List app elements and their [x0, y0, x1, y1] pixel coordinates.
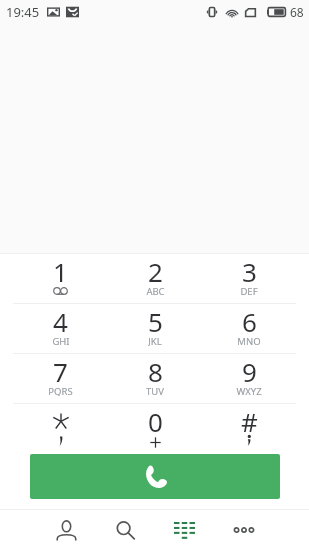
staticText: PQRS: [48, 385, 73, 396]
button[interactable]: 9: [202, 354, 296, 403]
button[interactable]: 3: [202, 254, 296, 303]
staticText: 0: [148, 404, 163, 434]
staticText: DEF: [240, 285, 258, 296]
button[interactable]: 1: [13, 254, 108, 303]
staticText: #: [241, 404, 258, 434]
button[interactable]: Call: [30, 454, 280, 499]
staticText: 9: [242, 354, 257, 384]
button[interactable]: 5: [108, 304, 202, 353]
staticText: 5: [148, 304, 163, 334]
staticText: GHI: [52, 335, 70, 346]
staticText: 68: [290, 4, 304, 20]
staticText: 3: [242, 254, 257, 284]
button[interactable]: Contacts: [37, 510, 96, 550]
staticText: WXYZ: [236, 385, 262, 396]
staticText: ABC: [146, 285, 165, 296]
button[interactable]: 8: [108, 354, 202, 403]
button[interactable]: [13, 404, 108, 454]
staticText: MNO: [237, 335, 261, 346]
button[interactable]: 7: [13, 354, 108, 403]
staticText: 8: [148, 354, 163, 384]
button[interactable]: 4: [13, 304, 108, 353]
button[interactable]: More options: [214, 510, 273, 550]
staticText: 7: [53, 354, 68, 384]
button[interactable]: 6: [202, 304, 296, 353]
button[interactable]: Search: [96, 510, 155, 550]
button[interactable]: #: [202, 404, 296, 454]
staticText: 1: [53, 254, 68, 284]
staticText: TUV: [146, 385, 164, 396]
button[interactable]: Dialpad: [155, 510, 214, 550]
staticText: 2: [148, 254, 163, 284]
staticText: JKL: [148, 335, 162, 346]
staticText: 6: [242, 304, 257, 334]
button[interactable]: 0: [108, 404, 202, 454]
staticText: 4: [53, 304, 68, 334]
button[interactable]: 2: [108, 254, 202, 303]
staticText: 19:45: [6, 3, 40, 21]
